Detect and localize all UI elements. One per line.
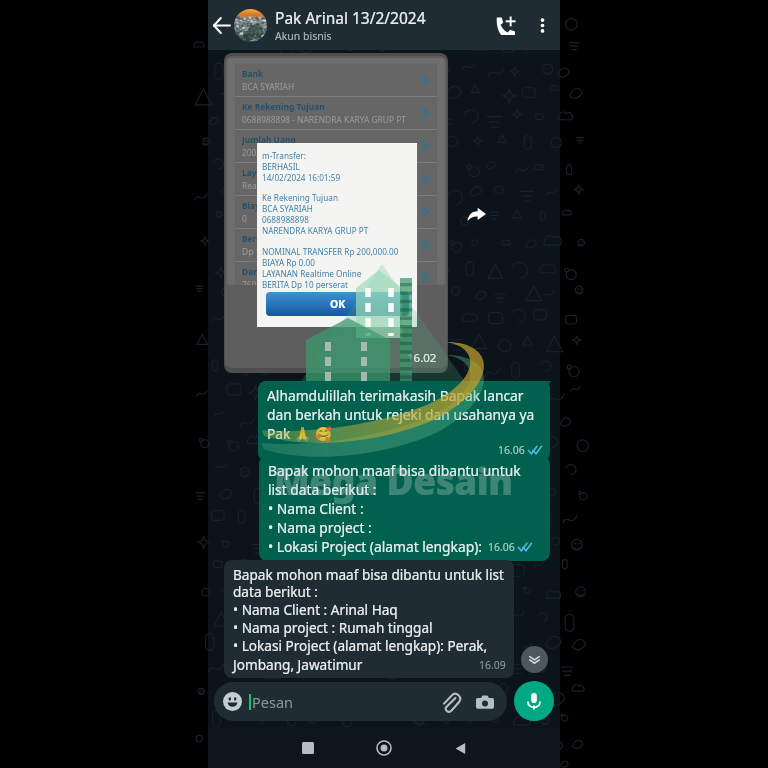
button[interactable]: OK bbox=[266, 292, 409, 316]
button[interactable]: Camera bbox=[474, 691, 496, 713]
button[interactable]: Voice call bbox=[486, 6, 524, 44]
staticText: Pesan bbox=[252, 692, 293, 712]
button[interactable]: Pak Arinal 13/2/2024 bbox=[275, 7, 486, 43]
staticText: Layanan bbox=[242, 167, 278, 178]
staticText: Jombang, Jawatimur bbox=[233, 655, 363, 674]
button[interactable]: Bapak mohon maaf bisa dibantu untuk list… bbox=[259, 456, 550, 561]
button[interactable]: Home bbox=[361, 728, 407, 768]
staticText: 16.09 bbox=[479, 658, 506, 672]
button[interactable]: More options bbox=[524, 7, 560, 43]
staticText: Dari Rekening bbox=[242, 266, 302, 277]
staticText: Pak Arinal 13/2/2024 bbox=[275, 7, 426, 28]
staticText: Ke Rekening Tujuan BCA SYARIAH 068898889… bbox=[262, 192, 369, 236]
staticText: Mega Desain bbox=[274, 455, 513, 505]
staticText: Alhamdulillah terimakasih Bapak lancar d… bbox=[267, 386, 542, 443]
staticText: Ke Rekening Tujuan bbox=[242, 101, 325, 112]
staticText: • Lokasi Project (alamat lengkap): bbox=[268, 537, 483, 556]
button[interactable]: Bapak mohon maaf bisa dibantu untuk list… bbox=[224, 560, 514, 678]
staticText: Bapak mohon maaf bisa dibantu untuk list… bbox=[268, 461, 521, 537]
button[interactable]: Forward bbox=[463, 200, 489, 226]
staticText: 0688988898 - NARENDRA KARYA GRUP PT bbox=[242, 114, 406, 125]
staticText: Dp 10 perserat bbox=[242, 246, 301, 257]
button[interactable]: Profile photo bbox=[234, 9, 267, 42]
staticText: OK bbox=[330, 297, 346, 311]
staticText: Realtime Online bbox=[242, 180, 305, 191]
button[interactable]: Recents bbox=[285, 728, 331, 768]
staticText: NOMINAL TRANSFER Rp 200,000.00 BIAYA Rp … bbox=[262, 246, 399, 290]
staticText: BCA SYARIAH bbox=[242, 81, 295, 92]
button[interactable]: Alhamdulillah terimakasih Bapak lancar d… bbox=[258, 381, 550, 461]
staticText: Bapak mohon maaf bisa dibantu untuk list… bbox=[233, 565, 504, 655]
staticText: 200,000.00 bbox=[242, 147, 285, 158]
button[interactable]: Attach bbox=[439, 691, 461, 713]
staticText: m-Transfer: BERHASIL 14/02/2024 16:01:59 bbox=[262, 150, 341, 183]
staticText: 16.02 bbox=[407, 350, 437, 366]
button[interactable]: Back bbox=[437, 728, 483, 768]
staticText: 7690988898 bbox=[242, 279, 290, 285]
staticText: Jumlah Uang bbox=[242, 134, 296, 145]
button[interactable]: Photo message, m-Transfer receipt, 16.02 bbox=[224, 53, 448, 373]
staticText: Akun bisnis bbox=[275, 29, 332, 43]
staticText: Berita bbox=[242, 233, 268, 244]
button[interactable]: Back bbox=[208, 12, 234, 38]
staticText: 16.06 bbox=[488, 540, 515, 554]
staticText: Biaya bbox=[242, 200, 265, 211]
button[interactable]: Scroll to bottom bbox=[521, 646, 548, 673]
staticText: 0 bbox=[242, 213, 247, 224]
button[interactable]: Voice message bbox=[514, 681, 554, 721]
staticText: Bank bbox=[242, 68, 264, 79]
button[interactable]: Pesan bbox=[214, 682, 507, 721]
staticText: 16.06 bbox=[498, 443, 525, 457]
